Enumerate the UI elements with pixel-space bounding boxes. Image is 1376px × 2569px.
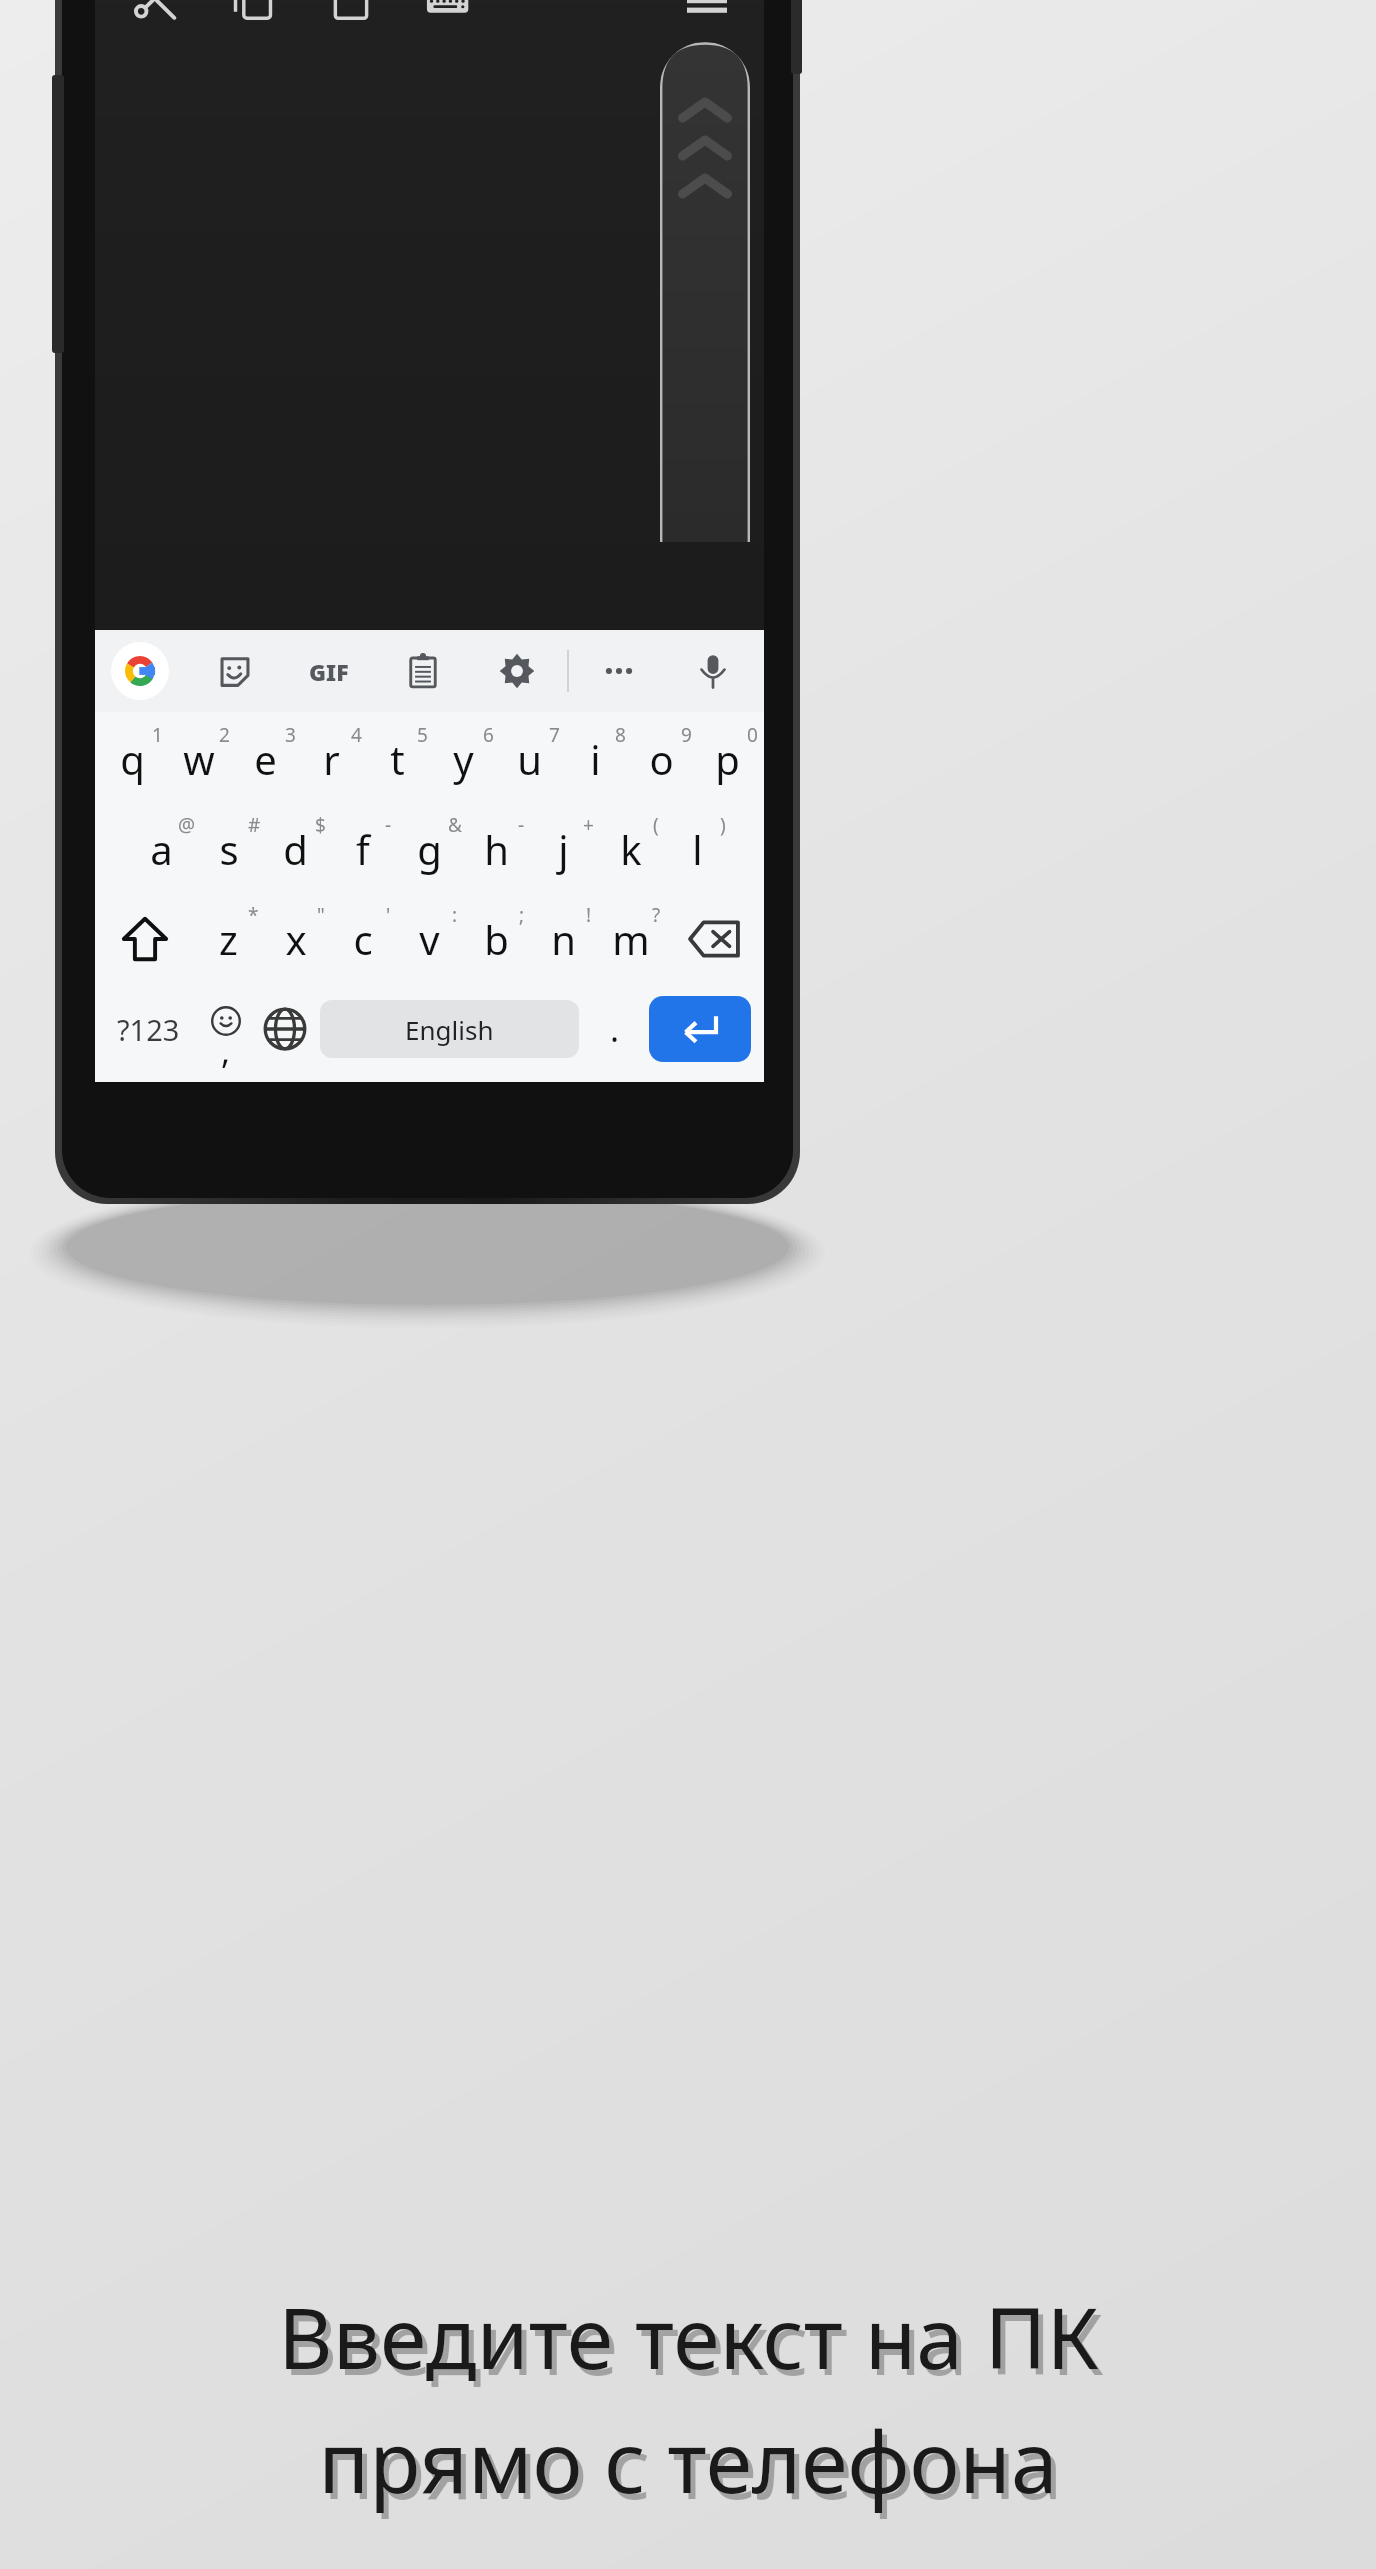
staticText: u [517, 732, 542, 786]
staticText: - [518, 812, 525, 838]
staticText: s [219, 822, 239, 876]
staticText: . [610, 1006, 620, 1052]
staticText: n [551, 912, 576, 966]
staticText: v [419, 912, 440, 966]
button[interactable]: w [166, 714, 232, 804]
button[interactable]: e [232, 714, 298, 804]
button[interactable]: s [195, 804, 262, 894]
button[interactable]: u [496, 714, 562, 804]
staticText: " [317, 902, 325, 928]
button[interactable]: n [530, 894, 597, 984]
staticText: l [692, 822, 703, 876]
button[interactable]: t [364, 714, 430, 804]
button[interactable]: p [694, 714, 760, 804]
staticText: # [248, 812, 261, 838]
button[interactable]: o [628, 714, 694, 804]
staticText: i [590, 732, 601, 786]
button[interactable]: Menu [674, 0, 740, 31]
button[interactable]: Shift [95, 894, 195, 984]
staticText: z [219, 912, 238, 966]
button[interactable]: r [298, 714, 364, 804]
staticText: p [715, 732, 740, 786]
staticText: b [484, 912, 509, 966]
staticText: 0 [747, 722, 758, 748]
staticText: Введите текст на ПК [283, 2285, 1104, 2399]
button[interactable]: q [99, 714, 166, 804]
staticText: ' [386, 902, 391, 928]
button[interactable]: k [597, 804, 664, 894]
staticText: ! [586, 902, 592, 928]
staticText: t [390, 732, 405, 786]
staticText: c [353, 912, 373, 966]
staticText: English [405, 1012, 494, 1047]
staticText: ; [519, 902, 525, 928]
button[interactable]: a [128, 804, 195, 894]
staticText: прямо с телефона [323, 2409, 1063, 2523]
button[interactable]: x [262, 894, 329, 984]
staticText: * [248, 902, 259, 928]
staticText: 9 [681, 722, 692, 748]
button[interactable]: m [597, 894, 664, 984]
button[interactable]: b [463, 894, 530, 984]
button[interactable]: Clipboard [392, 640, 454, 702]
staticText: 8 [615, 722, 626, 748]
staticText: 2 [219, 722, 230, 748]
staticText: r [323, 732, 340, 786]
staticText: ?123 [117, 1010, 180, 1049]
staticText: ) [720, 812, 726, 838]
staticText: 6 [483, 722, 494, 748]
staticText: 3 [285, 722, 296, 748]
button[interactable]: Google search [109, 640, 171, 702]
staticText: + [583, 812, 594, 838]
staticText: : [452, 902, 458, 928]
button[interactable]: Paste [315, 0, 387, 34]
button[interactable]: Scroll up [660, 42, 750, 542]
button[interactable]: z [195, 894, 262, 984]
button[interactable]: l [664, 804, 731, 894]
button[interactable]: Backspace [664, 894, 764, 984]
button[interactable]: j [530, 804, 597, 894]
button[interactable]: Stickers [204, 640, 266, 702]
staticText: , [221, 1028, 231, 1074]
staticText: ( [653, 812, 659, 838]
button[interactable]: English [320, 1000, 579, 1058]
staticText: a [150, 822, 173, 876]
staticText: q [120, 732, 145, 786]
staticText: 4 [351, 722, 362, 748]
button[interactable]: h [463, 804, 530, 894]
button[interactable]: GIF [298, 640, 360, 702]
staticText: & [448, 812, 462, 838]
button[interactable]: f [329, 804, 396, 894]
staticText: - [385, 812, 392, 838]
button[interactable]: . [585, 984, 644, 1074]
staticText: @ [178, 812, 196, 838]
button[interactable]: v [396, 894, 463, 984]
staticText: 7 [549, 722, 560, 748]
button[interactable]: y [430, 714, 496, 804]
staticText: w [183, 732, 215, 786]
button[interactable]: Keyboard [413, 0, 485, 34]
button[interactable]: Emoji [196, 984, 255, 1074]
staticText: y [453, 732, 474, 786]
button[interactable]: Copy [217, 0, 289, 34]
button[interactable]: Settings [486, 640, 548, 702]
button[interactable]: More options [588, 640, 650, 702]
button[interactable]: ?123 [101, 984, 196, 1074]
button[interactable]: d [262, 804, 329, 894]
staticText: o [649, 732, 674, 786]
staticText: Введите текст на ПК [278, 2279, 1099, 2393]
staticText: f [356, 822, 370, 876]
button[interactable]: Enter [649, 996, 751, 1062]
button[interactable]: g [396, 804, 463, 894]
button[interactable]: Change language [255, 984, 314, 1074]
staticText: h [484, 822, 509, 876]
staticText: прямо с телефона [318, 2403, 1058, 2517]
button[interactable]: c [329, 894, 396, 984]
staticText: k [620, 822, 642, 876]
button[interactable]: i [562, 714, 628, 804]
staticText: 5 [417, 722, 428, 748]
staticText: GIF [309, 656, 349, 687]
button[interactable]: Cut [119, 0, 191, 34]
button[interactable]: Voice input [682, 640, 744, 702]
staticText: d [283, 822, 308, 876]
